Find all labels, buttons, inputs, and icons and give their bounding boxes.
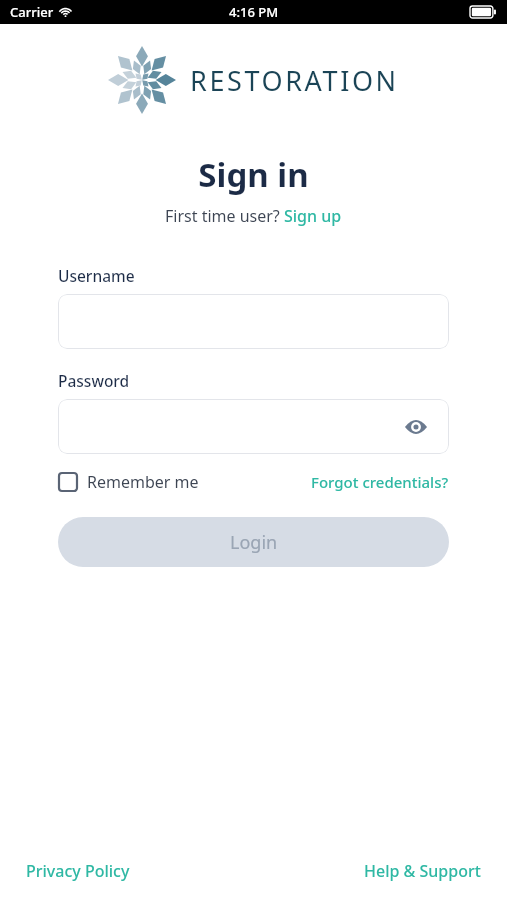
staticText: Username bbox=[58, 265, 135, 286]
staticText: Forgot credentials? bbox=[311, 472, 449, 492]
button[interactable]: Privacy Policy bbox=[26, 860, 130, 882]
button[interactable] bbox=[58, 294, 449, 349]
staticText: 4:16 PM bbox=[229, 3, 279, 21]
staticText: Carrier bbox=[10, 3, 54, 21]
button[interactable]: Sign up bbox=[284, 205, 342, 227]
staticText: Remember me bbox=[87, 471, 199, 493]
staticText: Privacy Policy bbox=[26, 860, 130, 882]
staticText: Sign up bbox=[284, 205, 342, 227]
button[interactable]: Forgot credentials? bbox=[311, 472, 449, 492]
staticText: Help & Support bbox=[364, 860, 481, 882]
staticText: RESTORATION bbox=[190, 62, 399, 99]
button[interactable]: Show password bbox=[58, 399, 449, 454]
staticText: Sign in bbox=[0, 152, 507, 197]
button[interactable]: Remember me bbox=[58, 471, 199, 493]
button[interactable]: Help & Support bbox=[364, 860, 481, 882]
staticText: Login bbox=[230, 530, 278, 555]
button[interactable]: Login bbox=[58, 517, 449, 567]
staticText: Password bbox=[58, 370, 130, 391]
button[interactable]: Show password bbox=[403, 414, 429, 440]
staticText: First time user? bbox=[165, 205, 284, 227]
